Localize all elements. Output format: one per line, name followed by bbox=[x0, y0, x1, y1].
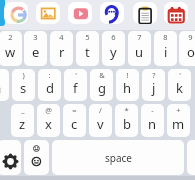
button[interactable]: / bbox=[89, 104, 112, 137]
button[interactable]: : bbox=[38, 69, 61, 101]
staticText: ' bbox=[179, 70, 181, 80]
button[interactable]: & bbox=[90, 69, 113, 101]
staticText: = bbox=[72, 105, 77, 115]
staticText: w bbox=[5, 43, 16, 61]
button[interactable]: Settings bbox=[0, 140, 21, 175]
button[interactable]: Enter bbox=[187, 140, 195, 175]
staticText: * bbox=[124, 105, 129, 115]
staticText: z bbox=[19, 115, 26, 133]
staticText: 6 bbox=[111, 32, 116, 42]
button[interactable]: = bbox=[63, 104, 86, 137]
staticText: o bbox=[187, 43, 195, 61]
button[interactable]: Search bbox=[0, 0, 5, 26]
button[interactable]: space bbox=[52, 140, 184, 175]
staticText: ' bbox=[75, 70, 77, 80]
button[interactable]: Images bbox=[36, 2, 60, 24]
button[interactable]: 8 bbox=[154, 31, 177, 66]
staticText: 5 bbox=[85, 32, 90, 42]
staticText: / bbox=[99, 105, 102, 115]
button[interactable]: + bbox=[167, 104, 190, 137]
button[interactable]: Clipboard bbox=[133, 2, 157, 24]
staticText: 7 bbox=[137, 32, 142, 42]
staticText: 8 bbox=[163, 32, 168, 42]
staticText: 9 bbox=[188, 32, 193, 42]
staticText: e bbox=[32, 43, 40, 61]
button[interactable]: 3 bbox=[24, 31, 47, 66]
staticText: b bbox=[123, 115, 131, 133]
staticText: f bbox=[73, 79, 78, 97]
button[interactable]: 2 bbox=[0, 31, 22, 66]
staticText: j bbox=[152, 79, 156, 97]
staticText: @ bbox=[45, 105, 52, 115]
button[interactable]: ' bbox=[168, 69, 191, 101]
staticText: u bbox=[135, 43, 144, 61]
staticText: x bbox=[45, 115, 52, 133]
staticText: t bbox=[85, 43, 90, 61]
button[interactable]: ? bbox=[142, 69, 165, 101]
button[interactable]: 4 bbox=[50, 31, 73, 66]
staticText: i bbox=[164, 43, 168, 61]
button[interactable]: 5 bbox=[76, 31, 99, 66]
staticText: m bbox=[172, 115, 185, 133]
staticText: k bbox=[176, 79, 183, 97]
staticText: d bbox=[46, 79, 54, 97]
button[interactable]: - bbox=[141, 104, 164, 137]
button[interactable]: Calendar bbox=[164, 2, 188, 24]
staticText: c bbox=[71, 115, 78, 133]
staticText: ? bbox=[152, 70, 156, 80]
staticText: a bbox=[0, 79, 2, 97]
staticText: 2 bbox=[8, 32, 13, 42]
staticText: r bbox=[59, 43, 65, 61]
button[interactable]: @ bbox=[37, 104, 60, 137]
button[interactable]: 6 bbox=[102, 31, 125, 66]
staticText: + bbox=[176, 105, 181, 115]
button[interactable]: ! bbox=[116, 69, 139, 101]
staticText: ) bbox=[22, 70, 25, 80]
button[interactable]: _ bbox=[11, 104, 34, 137]
button[interactable]: ' bbox=[64, 69, 87, 101]
button[interactable]: Google bbox=[4, 2, 28, 24]
staticText: h bbox=[123, 79, 132, 97]
button[interactable]: * bbox=[115, 104, 138, 137]
staticText: g bbox=[98, 79, 106, 97]
button[interactable]: Stickers bbox=[100, 2, 124, 24]
staticText: space bbox=[105, 151, 132, 165]
staticText: : bbox=[48, 70, 51, 80]
button[interactable]: Emoji bbox=[24, 140, 49, 175]
button[interactable]: ) bbox=[12, 69, 35, 101]
staticText: 3 bbox=[33, 32, 38, 42]
staticText: y bbox=[110, 43, 117, 61]
staticText: ! bbox=[126, 70, 129, 80]
staticText: _ bbox=[21, 105, 25, 115]
staticText: & bbox=[99, 70, 105, 80]
button[interactable]: YouTube bbox=[68, 2, 92, 24]
button[interactable]: a bbox=[0, 69, 9, 101]
staticText: s bbox=[20, 79, 27, 97]
button[interactable]: 9 bbox=[179, 31, 195, 66]
staticText: 4 bbox=[59, 32, 64, 42]
staticText: n bbox=[148, 115, 157, 133]
staticText: - bbox=[151, 105, 154, 115]
button[interactable]: 7 bbox=[128, 31, 151, 66]
staticText: v bbox=[97, 115, 104, 133]
